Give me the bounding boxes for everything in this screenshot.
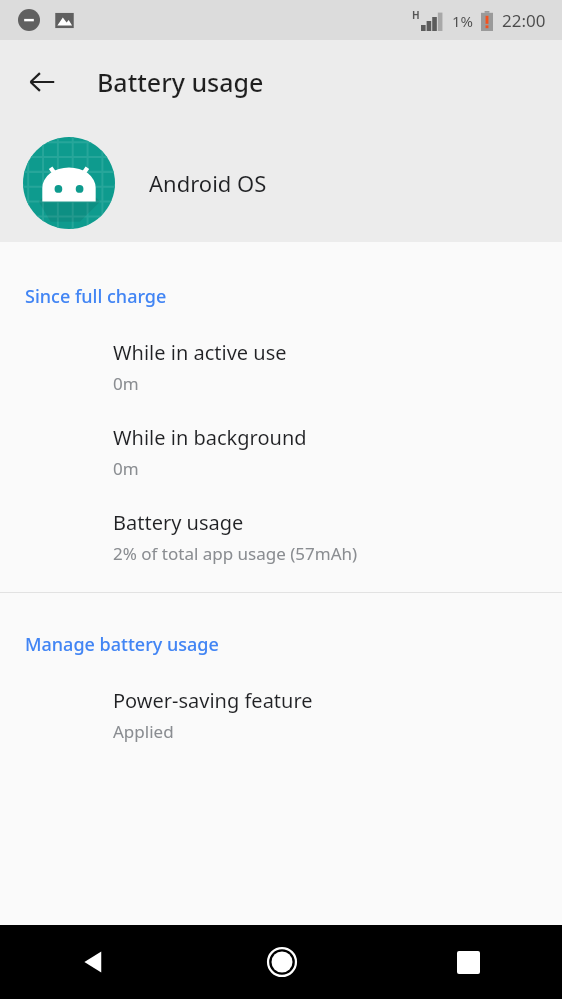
staticText: 0m <box>113 457 139 480</box>
button[interactable]: Back <box>14 54 70 110</box>
button[interactable]: Power-saving feature <box>0 666 562 751</box>
button[interactable]: Battery usage <box>0 488 562 573</box>
staticText: While in active use <box>113 339 287 366</box>
staticText: Battery usage <box>97 65 264 99</box>
staticText: 1% <box>452 11 474 31</box>
staticText: While in background <box>113 424 307 451</box>
staticText: 2% of total app usage (57mAh) <box>113 542 358 565</box>
staticText: Power-saving feature <box>113 687 313 714</box>
button[interactable]: Home <box>188 925 375 999</box>
button[interactable]: Manage battery usage <box>0 593 562 666</box>
staticText: 22:00 <box>502 9 546 32</box>
staticText: Manage battery usage <box>25 632 219 657</box>
staticText: 0m <box>113 372 139 395</box>
staticText: Applied <box>113 720 174 743</box>
staticText: Since full charge <box>25 284 167 309</box>
button[interactable]: While in background <box>0 403 562 488</box>
button[interactable]: Since full charge <box>0 242 562 318</box>
button[interactable]: While in active use <box>0 318 562 403</box>
staticText: H <box>412 8 420 22</box>
staticText: Battery usage <box>113 509 244 536</box>
button[interactable]: Recent apps <box>375 925 562 999</box>
button[interactable]: Back <box>0 925 188 999</box>
staticText: Android OS <box>149 168 267 198</box>
